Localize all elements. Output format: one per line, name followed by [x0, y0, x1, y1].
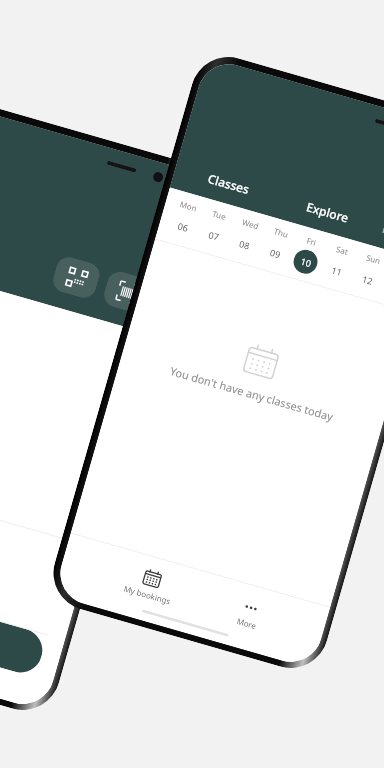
button[interactable]: Scan barcode: [101, 269, 153, 315]
button[interactable]: Sign up: [0, 571, 48, 678]
button[interactable]: Mon: [167, 197, 202, 242]
button[interactable]: Private: [376, 216, 384, 250]
staticText: Classes: [206, 170, 251, 197]
staticText: Thu: [272, 225, 290, 240]
staticText: 11: [330, 263, 344, 278]
staticText: My bookings: [122, 582, 172, 607]
staticText: More: [236, 615, 258, 631]
staticText: Wed: [241, 216, 260, 231]
staticText: 06: [176, 219, 190, 234]
staticText: Sun: [365, 251, 382, 266]
staticText: Tue: [211, 207, 227, 222]
button[interactable]: Sat: [320, 241, 356, 286]
staticText: Explore: [305, 198, 350, 225]
staticText: Sat: [335, 243, 349, 257]
staticText: 12: [361, 272, 374, 287]
staticText: 10: [299, 255, 313, 269]
button[interactable]: Thu: [259, 223, 295, 268]
staticText: 09: [268, 246, 282, 260]
staticText: Private: [381, 221, 384, 245]
button[interactable]: More: [231, 591, 268, 636]
staticText: 07: [207, 228, 221, 243]
button[interactable]: Wed: [228, 215, 264, 259]
button[interactable]: Classes: [201, 165, 256, 202]
button[interactable]: Fri: [290, 232, 325, 277]
button[interactable]: Explore: [300, 193, 355, 230]
staticText: 08: [238, 237, 251, 252]
staticText: Mon: [178, 198, 199, 214]
button[interactable]: See more: [0, 444, 84, 532]
staticText: You don't have any classes today: [168, 363, 335, 424]
staticText: Fri: [305, 234, 318, 248]
button[interactable]: Sun: [351, 250, 384, 295]
button[interactable]: Scan QR code: [50, 254, 102, 301]
button[interactable]: Tue: [197, 206, 233, 250]
button[interactable]: My bookings: [117, 558, 183, 611]
